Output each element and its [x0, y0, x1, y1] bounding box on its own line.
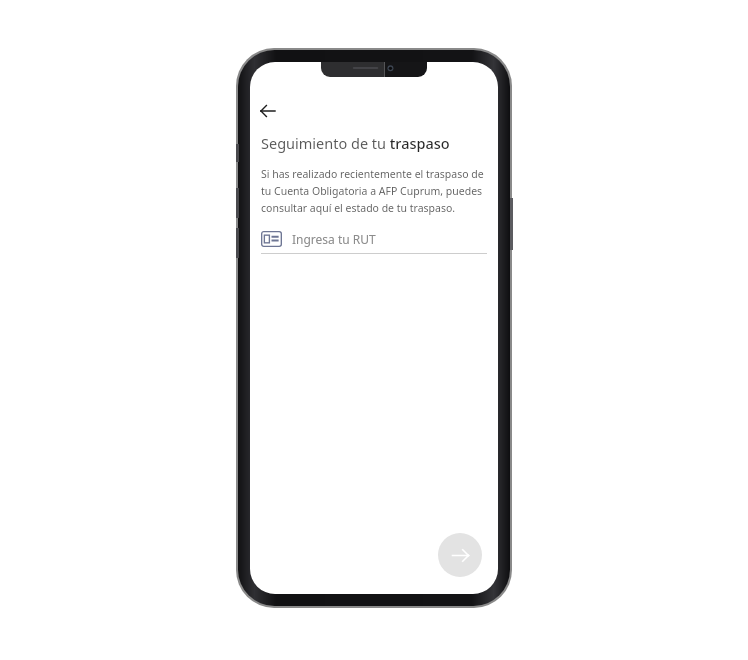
staticText: Seguimiento de tu traspaso — [261, 133, 450, 153]
staticText: Ingresa tu RUT — [292, 231, 376, 247]
button[interactable]: Ingresa tu RUT — [261, 225, 487, 253]
button[interactable]: Back — [252, 95, 284, 127]
button[interactable]: Continue — [438, 533, 482, 577]
staticText: Si has realizado recientemente el traspa… — [261, 167, 489, 215]
